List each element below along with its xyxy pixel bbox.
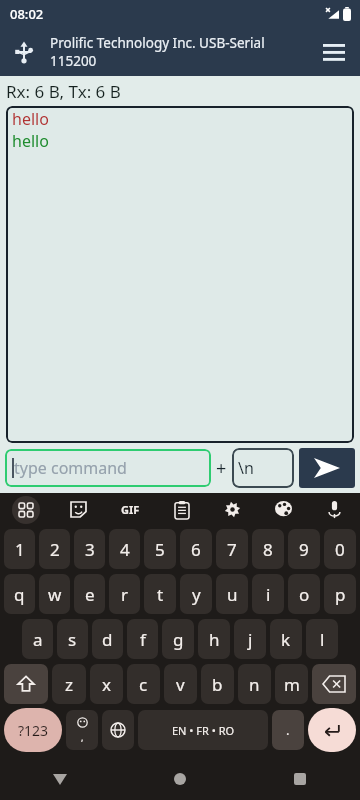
- staticText: 8: [263, 538, 273, 561]
- button[interactable]: z: [52, 664, 86, 704]
- button[interactable]: e: [74, 574, 105, 614]
- button[interactable]: Settings: [207, 493, 258, 526]
- button[interactable]: v: [164, 664, 197, 704]
- button[interactable]: m: [275, 664, 308, 704]
- button[interactable]: ?123: [4, 708, 62, 752]
- staticText: m: [284, 673, 300, 696]
- staticText: 4: [120, 538, 130, 561]
- staticText: type command: [14, 457, 127, 479]
- staticText: 1: [15, 538, 25, 561]
- button[interactable]: GIF: [104, 493, 156, 526]
- button[interactable]: Back: [0, 758, 120, 800]
- button[interactable]: 5: [144, 529, 176, 569]
- staticText: b: [212, 673, 223, 696]
- staticText: Rx: 6 B, Tx: 6 B: [6, 80, 121, 103]
- staticText: 0: [335, 538, 345, 561]
- button[interactable]: j: [234, 619, 266, 659]
- staticText: ,: [81, 731, 84, 743]
- button[interactable]: Enter: [308, 708, 356, 752]
- staticText: z: [65, 673, 73, 696]
- button[interactable]: h: [198, 619, 230, 659]
- button[interactable]: 1: [4, 529, 35, 569]
- button[interactable]: 6: [180, 529, 212, 569]
- button[interactable]: c: [127, 664, 160, 704]
- staticText: l: [320, 628, 325, 651]
- staticText: s: [68, 628, 77, 651]
- staticText: GIF: [121, 502, 140, 517]
- button[interactable]: s: [57, 619, 88, 659]
- button[interactable]: USB device: [8, 36, 40, 68]
- staticText: c: [139, 673, 148, 696]
- staticText: q: [14, 583, 25, 606]
- button[interactable]: d: [92, 619, 123, 659]
- button[interactable]: n: [238, 664, 271, 704]
- button[interactable]: r: [109, 574, 140, 614]
- staticText: ?123: [18, 721, 49, 740]
- button[interactable]: 3: [74, 529, 105, 569]
- staticText: .: [286, 721, 290, 739]
- button[interactable]: q: [4, 574, 35, 614]
- button[interactable]: g: [162, 619, 194, 659]
- button[interactable]: l: [306, 619, 338, 659]
- button[interactable]: x: [90, 664, 123, 704]
- button[interactable]: Recents: [240, 758, 360, 800]
- button[interactable]: Clipboard: [156, 493, 207, 526]
- button[interactable]: 2: [39, 529, 70, 569]
- staticText: hello: [12, 108, 49, 130]
- button[interactable]: a: [22, 619, 53, 659]
- button[interactable]: \n: [232, 448, 294, 488]
- button[interactable]: i: [252, 574, 284, 614]
- button[interactable]: .: [272, 710, 304, 750]
- button[interactable]: EN • FR • RO: [138, 710, 268, 750]
- staticText: r: [121, 583, 129, 606]
- button[interactable]: b: [201, 664, 234, 704]
- button[interactable]: t: [144, 574, 176, 614]
- button[interactable]: Backspace: [312, 664, 356, 704]
- staticText: n: [249, 673, 260, 696]
- button[interactable]: Apps: [0, 493, 52, 526]
- staticText: 9: [299, 538, 309, 561]
- button[interactable]: k: [270, 619, 302, 659]
- staticText: 7: [227, 538, 237, 561]
- button[interactable]: 4: [109, 529, 140, 569]
- staticText: e: [85, 583, 95, 606]
- staticText: w: [48, 583, 62, 606]
- button[interactable]: type command: [5, 449, 211, 487]
- staticText: hello: [12, 130, 49, 152]
- button[interactable]: Emoji and comma: [66, 710, 98, 750]
- staticText: 3: [85, 538, 95, 561]
- button[interactable]: p: [324, 574, 356, 614]
- staticText: j: [248, 628, 253, 651]
- button[interactable]: Home: [120, 758, 240, 800]
- button[interactable]: Theme: [258, 493, 309, 526]
- staticText: u: [227, 583, 238, 606]
- button[interactable]: Shift: [4, 664, 48, 704]
- button[interactable]: Send: [299, 448, 355, 488]
- button[interactable]: y: [180, 574, 212, 614]
- button[interactable]: u: [216, 574, 248, 614]
- button[interactable]: Sticker: [52, 493, 104, 526]
- button[interactable]: o: [288, 574, 320, 614]
- staticText: f: [140, 628, 146, 651]
- button[interactable]: Voice input: [309, 493, 360, 526]
- staticText: i: [266, 583, 271, 606]
- button[interactable]: 9: [288, 529, 320, 569]
- staticText: d: [102, 628, 113, 651]
- button[interactable]: 7: [216, 529, 248, 569]
- staticText: EN • FR • RO: [172, 723, 235, 738]
- staticText: 2: [50, 538, 60, 561]
- button[interactable]: 8: [252, 529, 284, 569]
- button[interactable]: 0: [324, 529, 356, 569]
- staticText: 115200: [50, 52, 97, 70]
- staticText: h: [209, 628, 220, 651]
- staticText: v: [176, 673, 185, 696]
- staticText: \n: [238, 457, 254, 479]
- button[interactable]: f: [127, 619, 158, 659]
- button[interactable]: w: [39, 574, 70, 614]
- staticText: x: [102, 673, 111, 696]
- button[interactable]: Menu: [316, 34, 352, 70]
- staticText: t: [157, 583, 164, 606]
- staticText: 6: [191, 538, 201, 561]
- button[interactable]: Change language: [102, 710, 134, 750]
- staticText: g: [173, 628, 184, 651]
